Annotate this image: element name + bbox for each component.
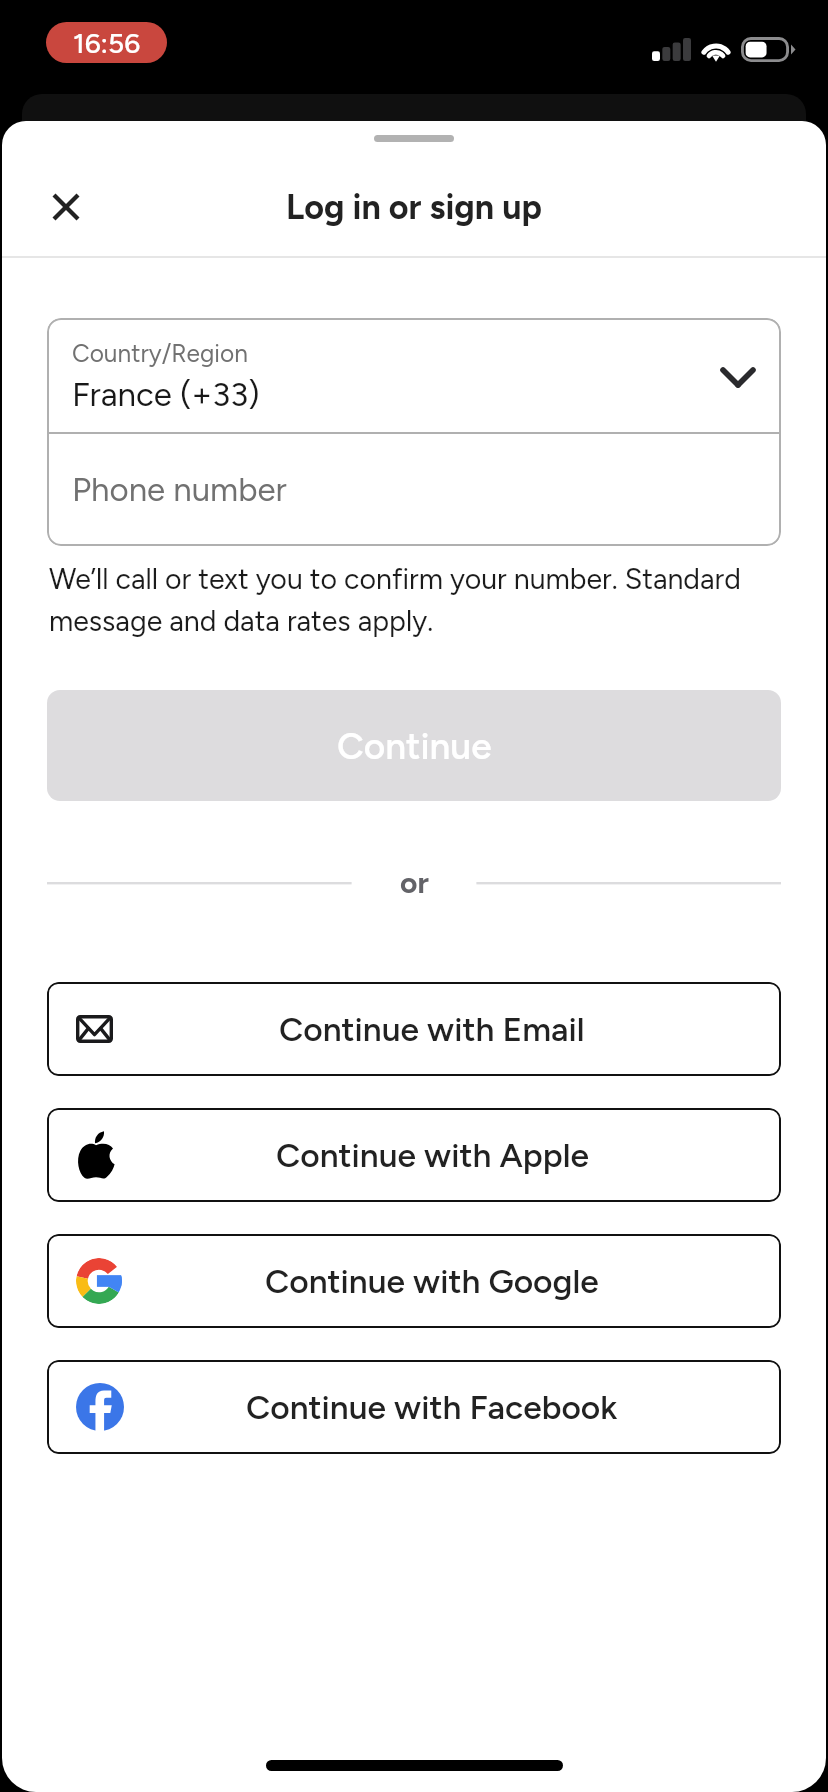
staticText: France (+33) (72, 375, 260, 415)
staticText: Continue with Facebook (246, 1387, 618, 1427)
staticText: Continue (337, 724, 492, 768)
button[interactable]: Continue with Google (47, 1234, 781, 1328)
staticText: Continue with Apple (276, 1135, 589, 1175)
staticText: or (400, 864, 429, 900)
button[interactable]: Continue with Apple (47, 1108, 781, 1202)
staticText: 16:56 (73, 26, 141, 60)
staticText: We’ll call or text you to confirm your n… (49, 562, 783, 638)
button[interactable]: Phone number (47, 434, 781, 546)
button[interactable]: Continue with Email (47, 982, 781, 1076)
staticText: Continue with Google (265, 1261, 599, 1301)
staticText: Continue with Email (279, 1009, 585, 1049)
staticText: Phone number (72, 470, 287, 510)
button[interactable]: Continue (47, 690, 781, 801)
button[interactable]: Continue with Facebook (47, 1360, 781, 1454)
button[interactable]: Country/Region (47, 318, 781, 432)
staticText: Country/Region (72, 339, 248, 368)
staticText: Log in or sign up (286, 187, 542, 228)
button[interactable]: Close (35, 176, 97, 238)
